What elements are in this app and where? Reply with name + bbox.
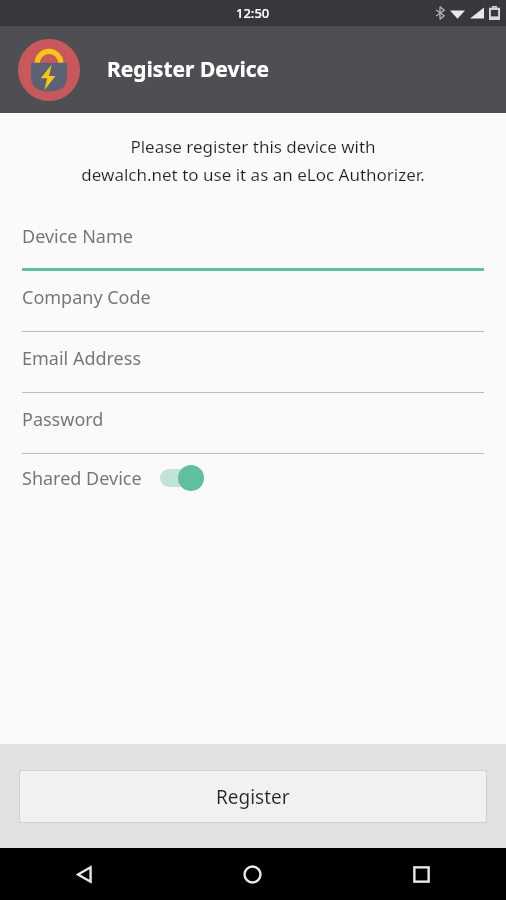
staticText: Password [22, 407, 104, 432]
button[interactable]: Password [0, 393, 506, 454]
button[interactable]: Recents [337, 848, 506, 900]
button[interactable]: Email Address [0, 332, 506, 393]
button[interactable]: Company Code [0, 271, 506, 332]
staticText: Company Code [22, 285, 151, 310]
button[interactable]: Register [20, 771, 486, 822]
staticText: 12:50 [236, 4, 270, 22]
button[interactable]: Shared Device [22, 454, 484, 502]
staticText: Register Device [107, 55, 270, 84]
staticText: Email Address [22, 346, 142, 371]
staticText: Register [216, 784, 290, 810]
button[interactable]: Device Name [0, 210, 506, 271]
staticText: Shared Device [22, 466, 142, 491]
staticText: Please register this device with dewalch… [14, 135, 492, 186]
staticText: Device Name [22, 224, 133, 249]
button[interactable]: Back [0, 848, 168, 900]
button[interactable]: Home [168, 848, 337, 900]
